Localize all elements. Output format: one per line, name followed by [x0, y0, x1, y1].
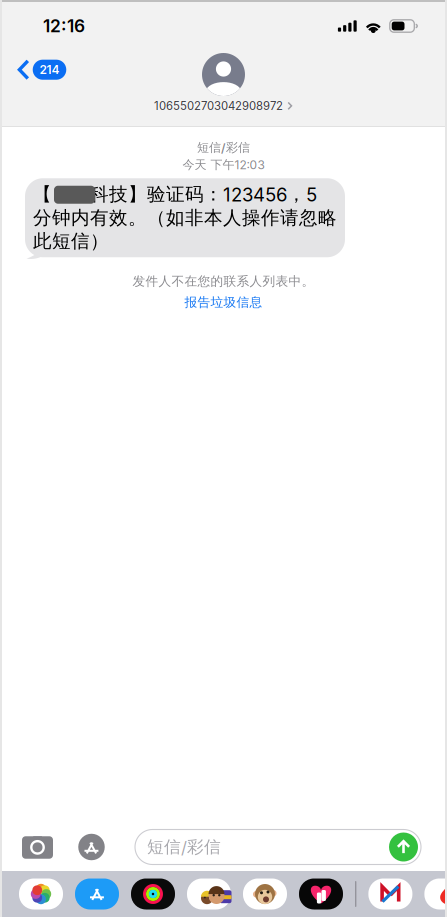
staticText: 12:16 — [43, 15, 85, 36]
button[interactable]: Memoji — [187, 878, 231, 909]
staticText: 1065502703042908972 — [154, 99, 283, 113]
staticText: 【 科技】验证码：123456，5 — [33, 183, 317, 206]
button[interactable]: More apps — [424, 878, 447, 909]
staticText: 发件人不在您的联系人列表中。 — [132, 273, 314, 289]
button[interactable]: Fitness — [131, 878, 175, 909]
button[interactable]: Send — [389, 832, 418, 861]
button[interactable]: App Store — [75, 878, 119, 909]
staticText: 报告垃圾信息 — [184, 294, 262, 310]
button[interactable]: 报告垃圾信息 — [184, 289, 262, 310]
button[interactable]: Camera — [22, 835, 53, 859]
staticText: 214 — [39, 62, 59, 77]
button[interactable]: Back to 214 conversations — [0, 44, 78, 98]
button[interactable]: Photos — [19, 878, 63, 909]
staticText: 今天 下午12:03 — [182, 157, 264, 172]
button[interactable]: 1065502703042908972 — [154, 44, 293, 113]
button[interactable]: Apps — [77, 833, 106, 860]
staticText: 分钟内有效。（如非本人操作请忽略 — [33, 206, 337, 229]
button[interactable]: Animoji — [243, 878, 287, 909]
button[interactable]: Gmail — [368, 878, 412, 909]
staticText: 短信/彩信 — [147, 836, 221, 857]
button[interactable]: Health — [299, 878, 343, 909]
staticText: 短信/彩信 — [197, 140, 250, 155]
staticText: 此短信） — [33, 229, 109, 253]
